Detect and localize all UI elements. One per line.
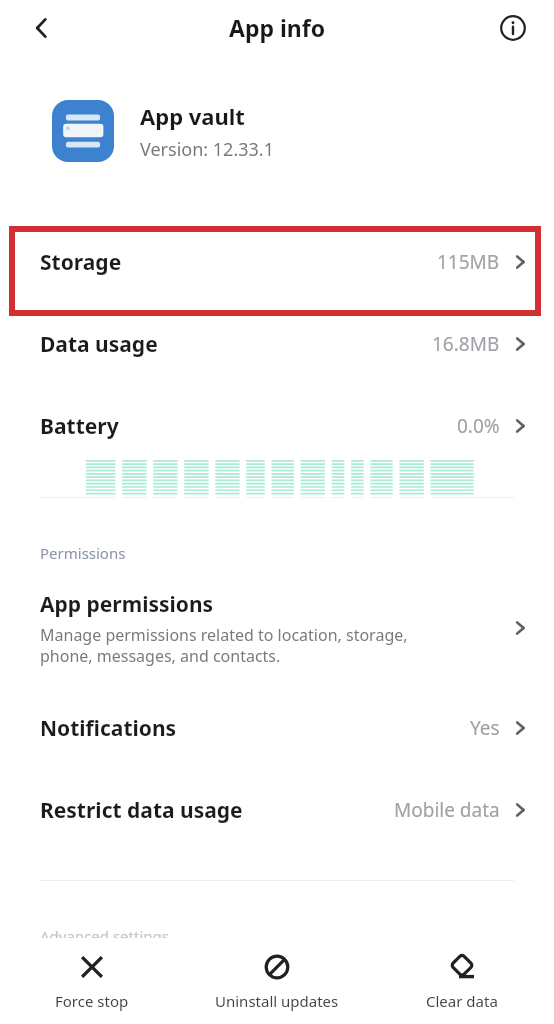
- staticText: Manage permissions related to location, …: [40, 624, 408, 667]
- staticText: App info: [229, 12, 326, 43]
- button[interactable]: App permissions: [0, 580, 554, 676]
- button[interactable]: Back: [16, 2, 68, 54]
- staticText: Advanced settings: [40, 926, 169, 946]
- staticText: App vault: [140, 101, 245, 131]
- staticText: Uninstall updates: [215, 991, 339, 1011]
- staticText: Yes: [470, 715, 500, 741]
- staticText: Clear data: [426, 991, 498, 1011]
- staticText: Storage: [40, 248, 437, 277]
- button[interactable]: Force stop: [0, 938, 184, 1024]
- staticText: Restrict data usage: [40, 796, 394, 825]
- button[interactable]: Clear data: [369, 938, 554, 1024]
- staticText: Notifications: [40, 714, 470, 743]
- staticText: Mobile data: [394, 797, 500, 823]
- button[interactable]: Restrict data usage: [0, 780, 554, 840]
- staticText: 0.0%: [457, 413, 500, 439]
- button[interactable]: Data usage: [0, 314, 554, 374]
- staticText: Permissions: [40, 543, 126, 563]
- button[interactable]: Uninstall updates: [184, 938, 369, 1024]
- button[interactable]: Notifications: [0, 698, 554, 758]
- button[interactable]: Storage: [0, 232, 554, 292]
- staticText: Force stop: [55, 991, 129, 1011]
- button[interactable]: App details: [488, 3, 538, 53]
- staticText: Battery: [40, 412, 457, 441]
- staticText: 16.8MB: [432, 331, 500, 357]
- staticText: 115MB: [437, 249, 500, 275]
- staticText: App permissions: [40, 590, 214, 619]
- staticText: Data usage: [40, 330, 432, 359]
- button[interactable]: Battery: [0, 396, 554, 456]
- staticText: Version: 12.33.1: [140, 137, 274, 162]
